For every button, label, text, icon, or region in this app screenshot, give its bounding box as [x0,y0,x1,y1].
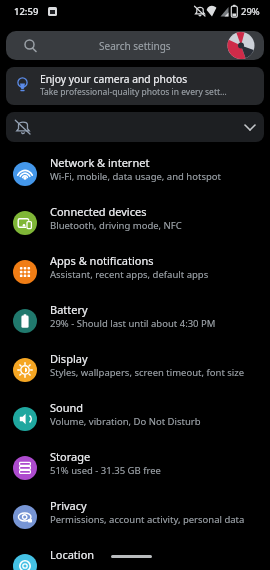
button[interactable]: Storage [0,444,270,493]
button[interactable]: Apps & notifications [0,248,270,297]
staticText: Permissions, account activity, personal … [50,513,245,526]
staticText: 51% used - 31.35 GB free [50,464,161,477]
staticText: Privacy [50,498,87,513]
button[interactable]: Search settings [6,31,264,60]
staticText: Display [50,351,88,366]
staticText: Take professional-quality photos in ever… [40,86,227,98]
staticText: Assistant, recent apps, default apps [50,268,209,281]
staticText: Storage [50,449,91,464]
button[interactable]: Display [0,346,270,395]
staticText: Connected devices [50,204,147,219]
button[interactable]: Network & internet [0,150,270,199]
staticText: 29% [241,5,260,18]
staticText: Volume, vibration, Do Not Disturb [50,415,201,428]
staticText: Bluetooth, driving mode, NFC [50,219,182,232]
button[interactable]: Enjoy your camera and photos [6,67,264,105]
button[interactable]: Battery [0,297,270,346]
staticText: 12:59 [14,5,39,18]
staticText: Enjoy your camera and photos [40,72,188,86]
button[interactable]: Location [0,542,270,570]
button[interactable] [6,112,264,142]
staticText: Apps & notifications [50,253,154,268]
staticText: Sound [50,400,84,415]
button[interactable]: Sound [0,395,270,444]
staticText: Styles, wallpapers, screen timeout, font… [50,366,245,379]
button[interactable]: Connected devices [0,199,270,248]
staticText: Location [50,547,95,562]
staticText: Network & internet [50,155,150,170]
staticText: Battery [50,302,88,317]
button[interactable]: Privacy [0,493,270,542]
staticText: Search settings [99,39,171,53]
staticText: Wi-Fi, mobile, data usage, and hotspot [50,170,221,183]
staticText: 29% - Should last until about 4:30 PM [50,317,216,330]
